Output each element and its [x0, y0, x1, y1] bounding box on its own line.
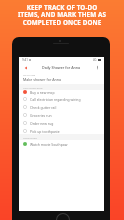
staticText: Pick up toothpaste	[30, 129, 60, 134]
button[interactable]: Watch movie Southpaw	[19, 140, 104, 148]
button[interactable]: Buy a new mop	[19, 88, 104, 96]
staticText: Watch movie Southpaw	[30, 142, 68, 147]
staticText: Call electrician regarding wiring	[30, 97, 81, 102]
staticText: 4G	[93, 58, 97, 62]
staticText: Groceries run	[30, 113, 52, 118]
staticText: NOT COMPLETED	[23, 86, 43, 89]
staticText: COMPLETED	[23, 136, 37, 139]
staticText: KEEP TRACK OF TO-DO ITEMS, AND MARK THEM…	[2, 3, 122, 27]
button[interactable]: More options	[94, 64, 101, 71]
staticText: Daily Shower for Anna	[42, 65, 81, 70]
button[interactable]: Check gutter rail	[19, 103, 104, 111]
staticText: Make shower for Anna	[23, 77, 62, 82]
staticText: 9:41	[22, 58, 28, 62]
staticText: Buy a new mop	[30, 90, 55, 95]
button[interactable]: Pick up toothpaste	[19, 127, 104, 135]
staticText: LIST NAME	[23, 73, 36, 76]
staticText: Order new rug	[30, 121, 54, 126]
button[interactable]: Groceries run	[19, 111, 104, 119]
button[interactable]: Call electrician regarding wiring	[19, 95, 104, 103]
staticText: Check gutter rail	[30, 105, 57, 110]
button[interactable]: Back	[22, 64, 29, 71]
button[interactable]: Order new rug	[19, 119, 104, 127]
